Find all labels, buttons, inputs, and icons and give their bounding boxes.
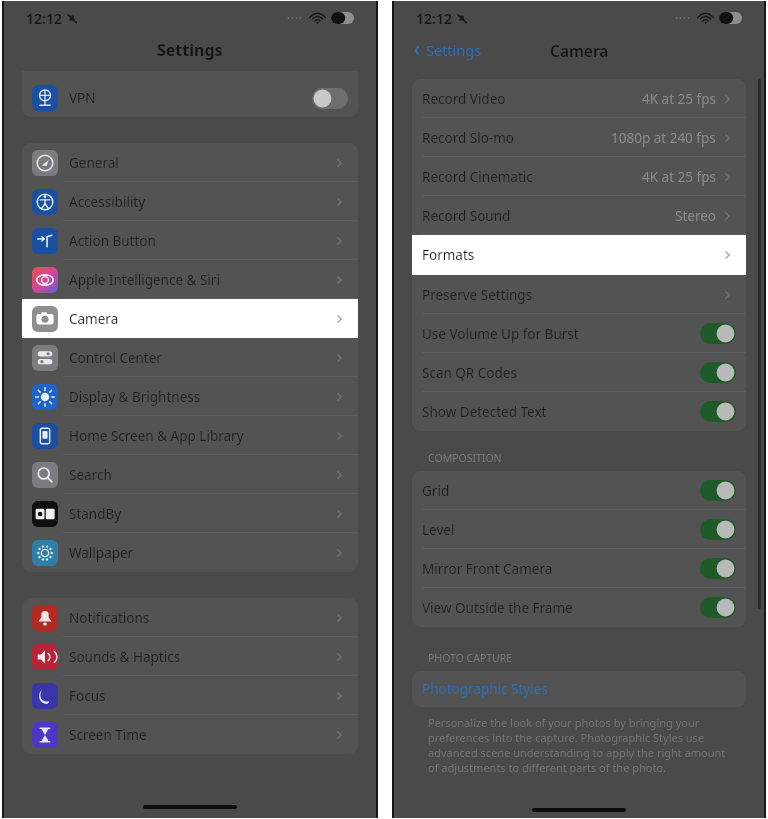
button[interactable]: Camera xyxy=(22,299,358,338)
staticText: Use Volume Up for Burst xyxy=(422,325,700,343)
staticText: Mirror Front Camera xyxy=(422,560,700,578)
staticText: Camera xyxy=(69,310,334,328)
button[interactable]: Screen Time xyxy=(22,715,358,754)
button[interactable]: Photographic Styles xyxy=(412,671,746,707)
staticText: VPN xyxy=(69,89,312,107)
staticText: Display & Brightness xyxy=(69,388,334,406)
button[interactable]: Apple Intelligence & Siri xyxy=(22,260,358,299)
button[interactable]: Control Center xyxy=(22,338,358,377)
staticText: 12:12 xyxy=(416,9,452,28)
staticText: Scan QR Codes xyxy=(422,364,700,382)
button[interactable]: Preserve Settings xyxy=(412,275,746,314)
button[interactable]: Formats xyxy=(412,235,746,275)
staticText: Home Screen & App Library xyxy=(69,427,334,445)
button[interactable]: Record Slo-mo xyxy=(412,118,746,157)
staticText: Personalize the look of your photos by b… xyxy=(428,715,730,775)
staticText: Show Detected Text xyxy=(422,403,700,421)
staticText: Settings xyxy=(157,39,223,61)
button[interactable]: Level xyxy=(412,510,746,549)
button[interactable]: Record Video xyxy=(412,79,746,118)
staticText: 4K at 25 fps xyxy=(642,168,716,186)
button[interactable]: Sounds & Haptics xyxy=(22,637,358,676)
staticText: Stereo xyxy=(675,207,716,225)
button[interactable]: General xyxy=(22,143,358,182)
button[interactable]: Home Screen & App Library xyxy=(22,416,358,455)
button[interactable]: Grid xyxy=(412,471,746,510)
staticText: Control Center xyxy=(69,349,334,367)
staticText: Record Cinematic xyxy=(422,168,642,186)
button[interactable]: Scan QR Codes xyxy=(412,353,746,392)
button[interactable]: Search xyxy=(22,455,358,494)
staticText: Focus xyxy=(69,687,334,705)
staticText: Record Slo-mo xyxy=(422,129,611,147)
button[interactable]: Notifications xyxy=(22,598,358,637)
staticText: COMPOSITION xyxy=(428,451,502,465)
staticText: Sounds & Haptics xyxy=(69,648,334,666)
staticText: Preserve Settings xyxy=(422,286,722,304)
staticText: Apple Intelligence & Siri xyxy=(69,271,334,289)
staticText: View Outside the Frame xyxy=(422,599,700,617)
button[interactable]: Focus xyxy=(22,676,358,715)
button[interactable]: Use Volume Up for Burst xyxy=(412,314,746,353)
staticText: Search xyxy=(69,466,334,484)
staticText: Record Sound xyxy=(422,207,675,225)
button[interactable]: VPN xyxy=(22,79,358,117)
staticText: 4K at 25 fps xyxy=(642,90,716,108)
staticText: Record Video xyxy=(422,90,642,108)
staticText: Wallpaper xyxy=(69,544,334,562)
staticText: Accessibility xyxy=(69,193,334,211)
staticText: Grid xyxy=(422,482,700,500)
button[interactable]: Wallpaper xyxy=(22,533,358,572)
button[interactable]: View Outside the Frame xyxy=(412,588,746,627)
staticText: Camera xyxy=(550,40,609,61)
staticText: Photographic Styles xyxy=(422,680,736,698)
button[interactable]: Accessibility xyxy=(22,182,358,221)
staticText: General xyxy=(69,154,334,172)
staticText: Action Button xyxy=(69,232,334,250)
button[interactable]: Record Sound xyxy=(412,196,746,235)
staticText: StandBy xyxy=(69,505,334,523)
button[interactable]: Record Cinematic xyxy=(412,157,746,196)
button[interactable]: Action Button xyxy=(22,221,358,260)
staticText: PHOTO CAPTURE xyxy=(428,651,513,665)
staticText: 12:12 xyxy=(26,9,62,28)
button[interactable]: Display & Brightness xyxy=(22,377,358,416)
button[interactable]: Settings xyxy=(406,37,486,63)
staticText: Formats xyxy=(422,246,722,264)
staticText: Notifications xyxy=(69,609,334,627)
button[interactable]: Mirror Front Camera xyxy=(412,549,746,588)
staticText: 1080p at 240 fps xyxy=(611,129,716,147)
staticText: Screen Time xyxy=(69,726,334,744)
staticText: Level xyxy=(422,521,700,539)
button[interactable]: Show Detected Text xyxy=(412,392,746,431)
button[interactable]: StandBy xyxy=(22,494,358,533)
staticText: Settings xyxy=(426,40,482,60)
